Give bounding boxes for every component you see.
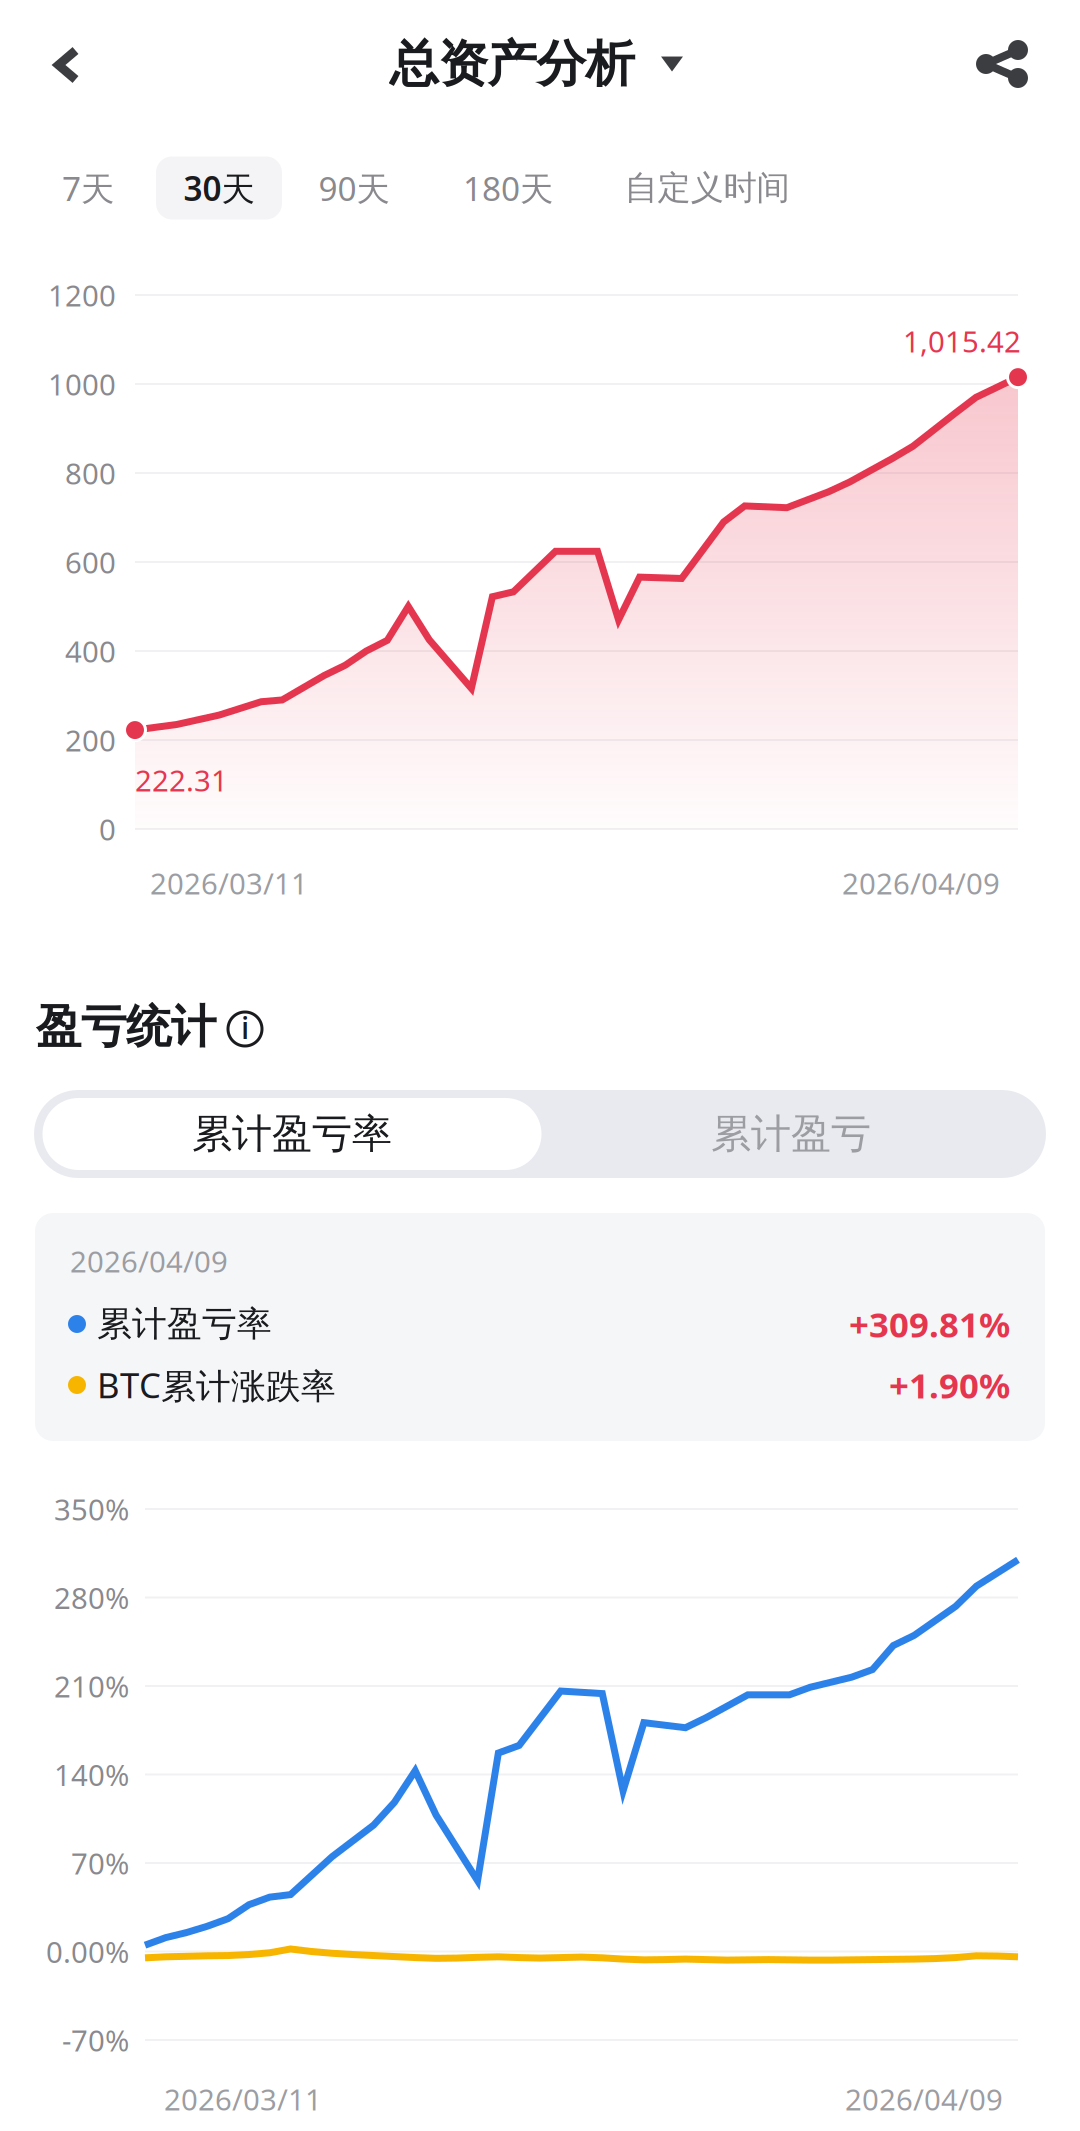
staticText: 2026/04/09 (845, 2079, 1003, 2118)
staticText: 0.00% (46, 1932, 129, 1971)
button[interactable]: Change range (637, 29, 707, 99)
staticText: 7天 (62, 166, 114, 210)
staticText: 2026/03/11 (164, 2079, 322, 2118)
staticText: 0 (99, 809, 116, 848)
staticText: 1200 (48, 275, 116, 314)
button[interactable]: 累计盈亏率 (42, 1098, 541, 1170)
button[interactable]: Back (12, 10, 122, 120)
button[interactable]: 30天 (156, 156, 282, 219)
button[interactable]: Share (947, 9, 1057, 119)
staticText: +309.81% (849, 1301, 1010, 1347)
staticText: 30天 (183, 166, 254, 210)
button[interactable]: 累计盈亏 (541, 1098, 1040, 1170)
staticText: 222.31 (135, 760, 228, 799)
button[interactable]: 90天 (294, 156, 414, 219)
staticText: 2026/03/11 (150, 863, 308, 902)
staticText: 280% (54, 1578, 129, 1617)
staticText: 200 (65, 720, 116, 759)
staticText: 210% (54, 1666, 129, 1705)
staticText: +1.90% (889, 1362, 1010, 1408)
button[interactable]: 180天 (438, 156, 578, 219)
staticText: 累计盈亏率 (192, 1109, 392, 1158)
button[interactable]: 自定义时间 (592, 156, 822, 219)
staticText: 400 (65, 631, 116, 670)
staticText: 800 (65, 453, 116, 492)
staticText: 1,015.42 (903, 321, 1021, 360)
staticText: i (241, 1007, 249, 1047)
staticText: 累计盈亏 (711, 1109, 871, 1158)
staticText: 累计盈亏率 (97, 1303, 272, 1345)
staticText: 350% (54, 1489, 129, 1528)
staticText: 盈亏统计 (36, 999, 216, 1055)
staticText: 2026/04/09 (842, 863, 1000, 902)
staticText: 140% (54, 1755, 129, 1794)
staticText: 总资产分析 (389, 34, 634, 94)
button[interactable]: 7天 (33, 156, 143, 219)
staticText: 70% (71, 1843, 129, 1882)
staticText: -70% (62, 2020, 129, 2059)
staticText: 600 (65, 542, 116, 581)
staticText: 1000 (48, 364, 116, 403)
staticText: 90天 (318, 166, 389, 210)
staticText: BTC累计涨跌率 (97, 1362, 336, 1408)
staticText: 2026/04/09 (70, 1241, 228, 1280)
staticText: 自定义时间 (624, 167, 789, 208)
staticText: 180天 (463, 166, 553, 210)
